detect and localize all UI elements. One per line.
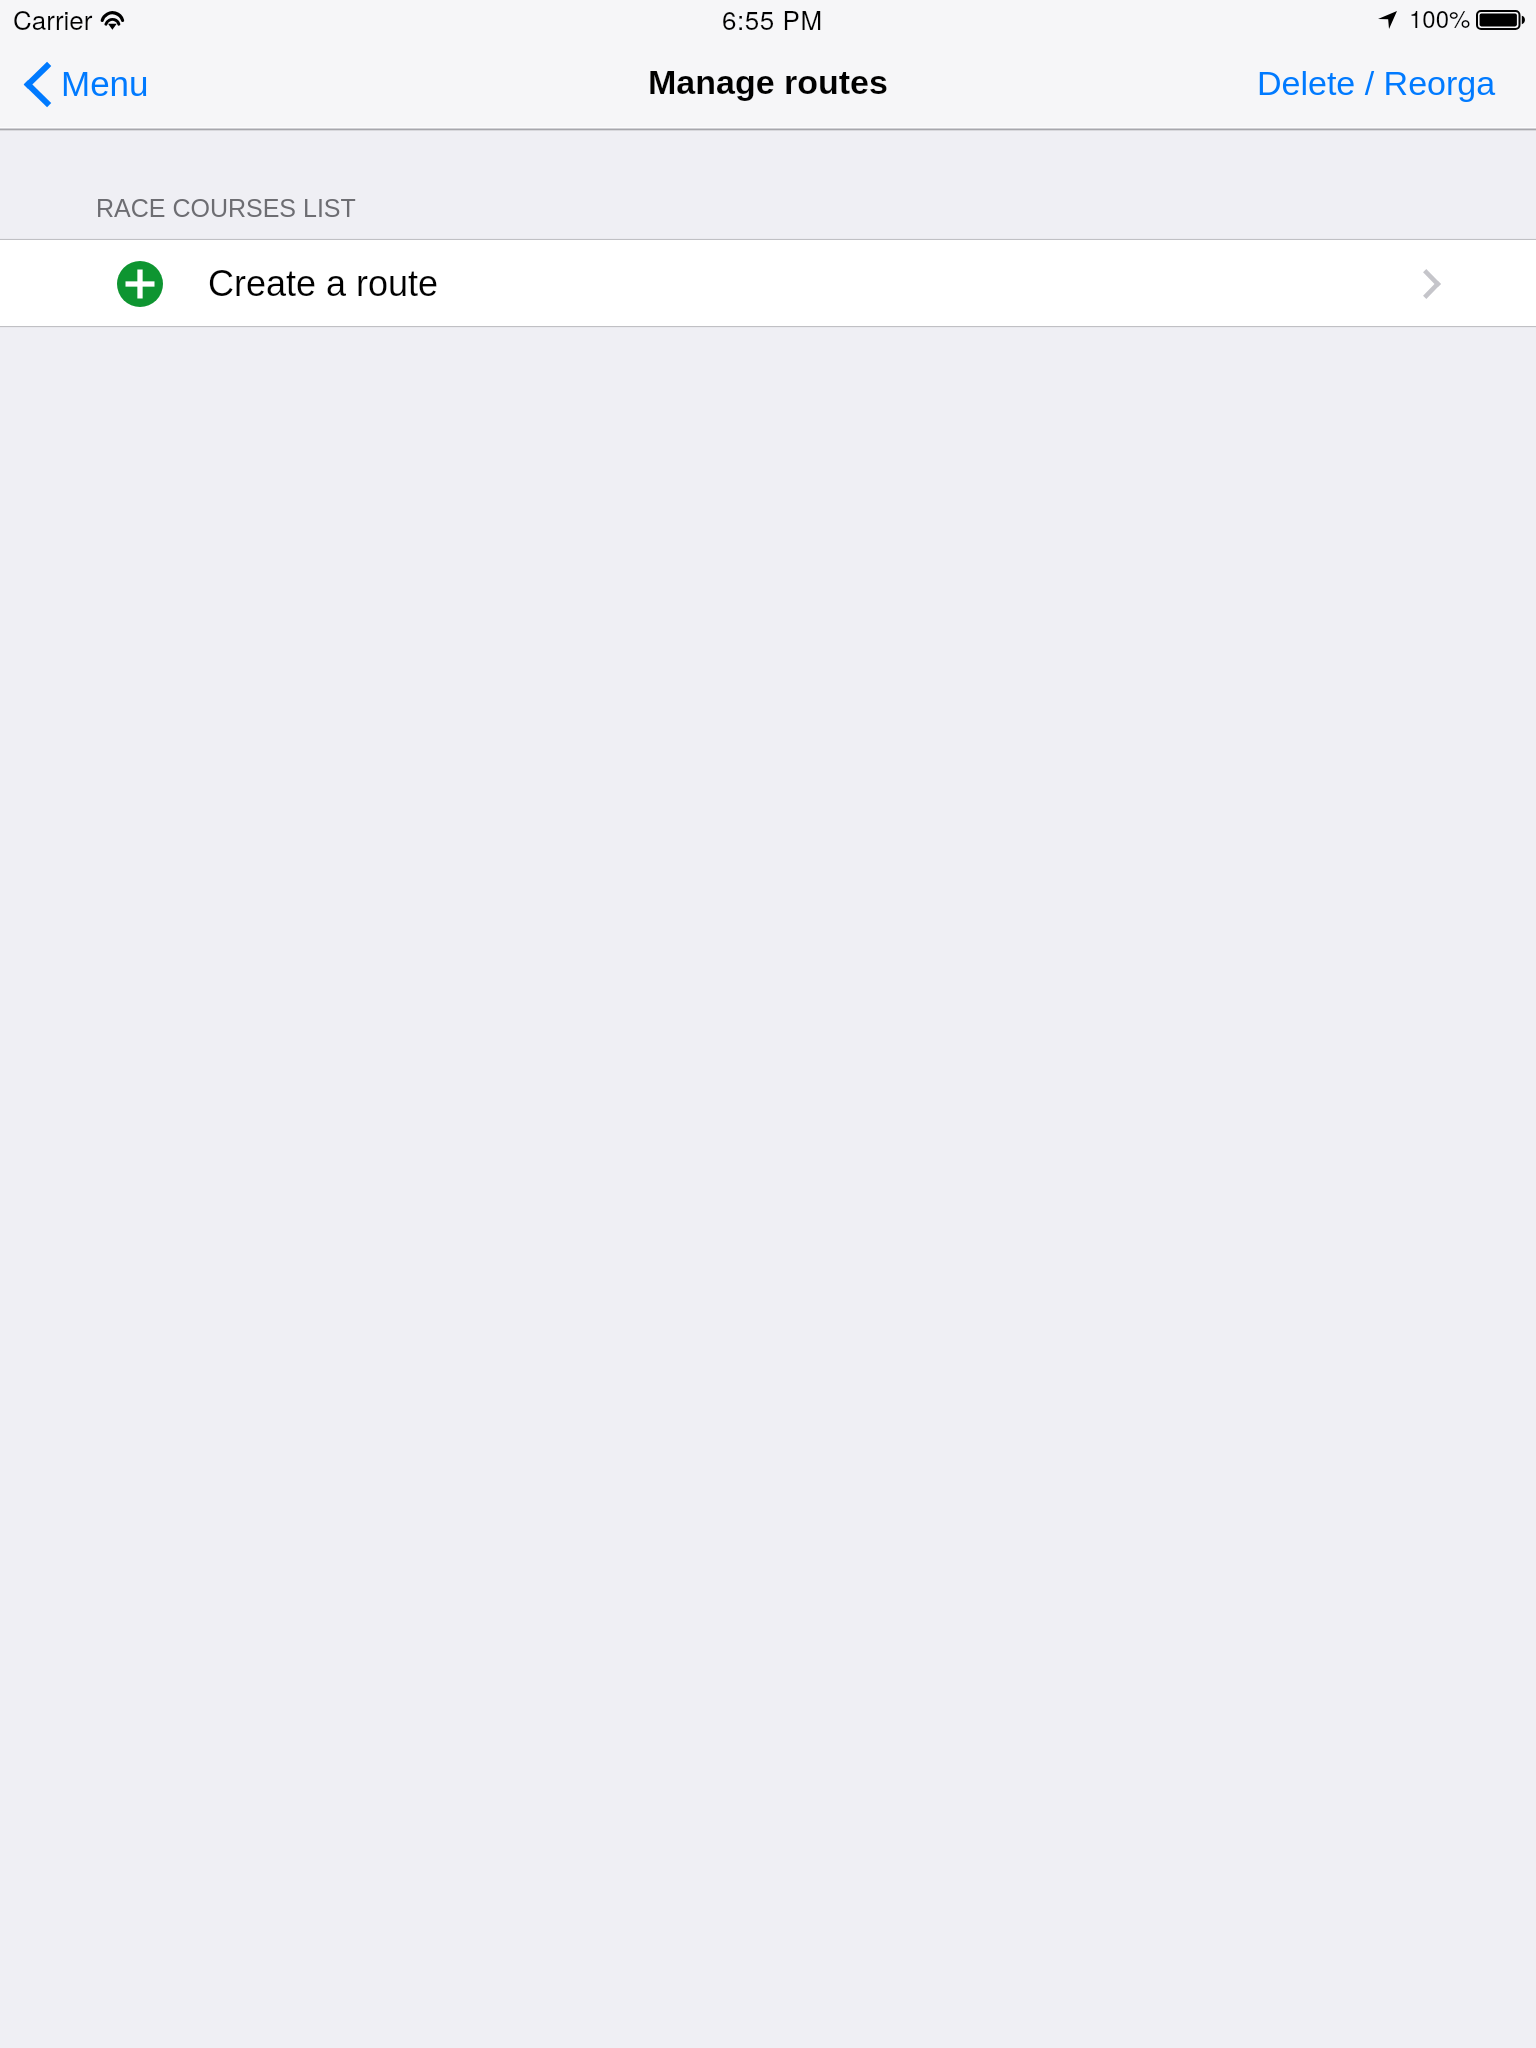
staticText: 100% bbox=[1409, 0, 1471, 34]
button[interactable]: Create a route bbox=[0, 240, 1536, 327]
staticText: 6:55 PM bbox=[722, 0, 823, 37]
button[interactable]: Delete / Reorga bbox=[1237, 53, 1536, 115]
staticText: Menu bbox=[61, 64, 149, 103]
button[interactable]: Back bbox=[0, 55, 165, 114]
staticText: Create a route bbox=[208, 263, 439, 303]
staticText: Carrier bbox=[13, 0, 93, 37]
staticText: RACE COURSES LIST bbox=[96, 194, 356, 222]
staticText: Manage routes bbox=[648, 63, 888, 101]
other: Back bbox=[25, 63, 50, 106]
